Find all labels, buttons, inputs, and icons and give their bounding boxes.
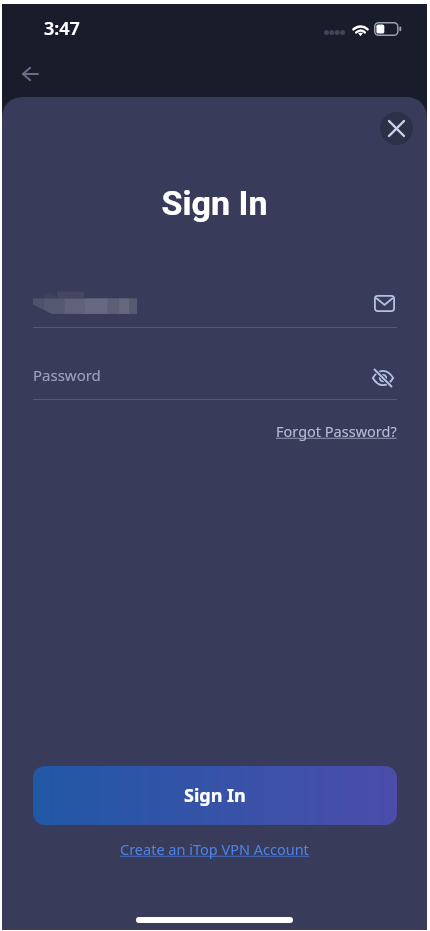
button[interactable]: Password xyxy=(33,351,397,399)
staticText: 3:47 xyxy=(44,16,80,41)
button[interactable]: Back xyxy=(10,54,50,94)
button[interactable]: Close xyxy=(380,112,413,145)
button[interactable] xyxy=(33,279,397,327)
staticText: Sign In xyxy=(184,783,246,808)
button[interactable]: Forgot Password? xyxy=(276,421,397,441)
staticText: Password xyxy=(33,365,101,385)
staticText: Sign In xyxy=(2,183,427,223)
button[interactable]: Create an iTop VPN Account xyxy=(120,839,309,859)
button[interactable]: Sign In xyxy=(33,766,397,825)
